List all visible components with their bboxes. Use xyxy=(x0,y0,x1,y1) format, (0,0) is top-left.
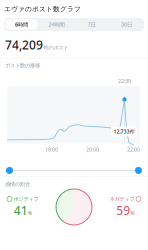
button[interactable]: Time range xyxy=(0,164,148,176)
staticText: 30日 xyxy=(121,21,132,28)
button[interactable]: 30日 xyxy=(109,18,144,31)
staticText: 22:00 xyxy=(127,146,140,153)
staticText: 7日 xyxy=(87,21,95,28)
staticText: ネガティブ xyxy=(109,196,134,202)
staticText: 18:00 xyxy=(45,146,58,153)
staticText: 24時間 xyxy=(48,21,64,28)
staticText: 74,209 xyxy=(5,37,43,53)
staticText: 12,733件 xyxy=(113,128,134,135)
staticText: 感情の割合 xyxy=(5,181,30,187)
staticText: エヴァのポスト数グラフ xyxy=(4,5,81,13)
staticText: 6時間 xyxy=(15,21,28,28)
staticText: ポスト数の推移 xyxy=(5,62,40,69)
staticText: % xyxy=(28,209,32,216)
staticText: ポジティブ xyxy=(13,196,38,202)
staticText: 20:00 xyxy=(86,146,99,153)
staticText: % xyxy=(130,209,134,216)
staticText: 59 xyxy=(116,202,130,218)
staticText: 22:30 xyxy=(118,77,131,84)
staticText: 件のポスト xyxy=(43,45,68,51)
staticText: 41 xyxy=(14,202,28,218)
button[interactable]: 6時間 xyxy=(4,18,39,31)
button[interactable]: 7日 xyxy=(74,18,109,31)
button[interactable]: 24時間 xyxy=(39,18,74,31)
